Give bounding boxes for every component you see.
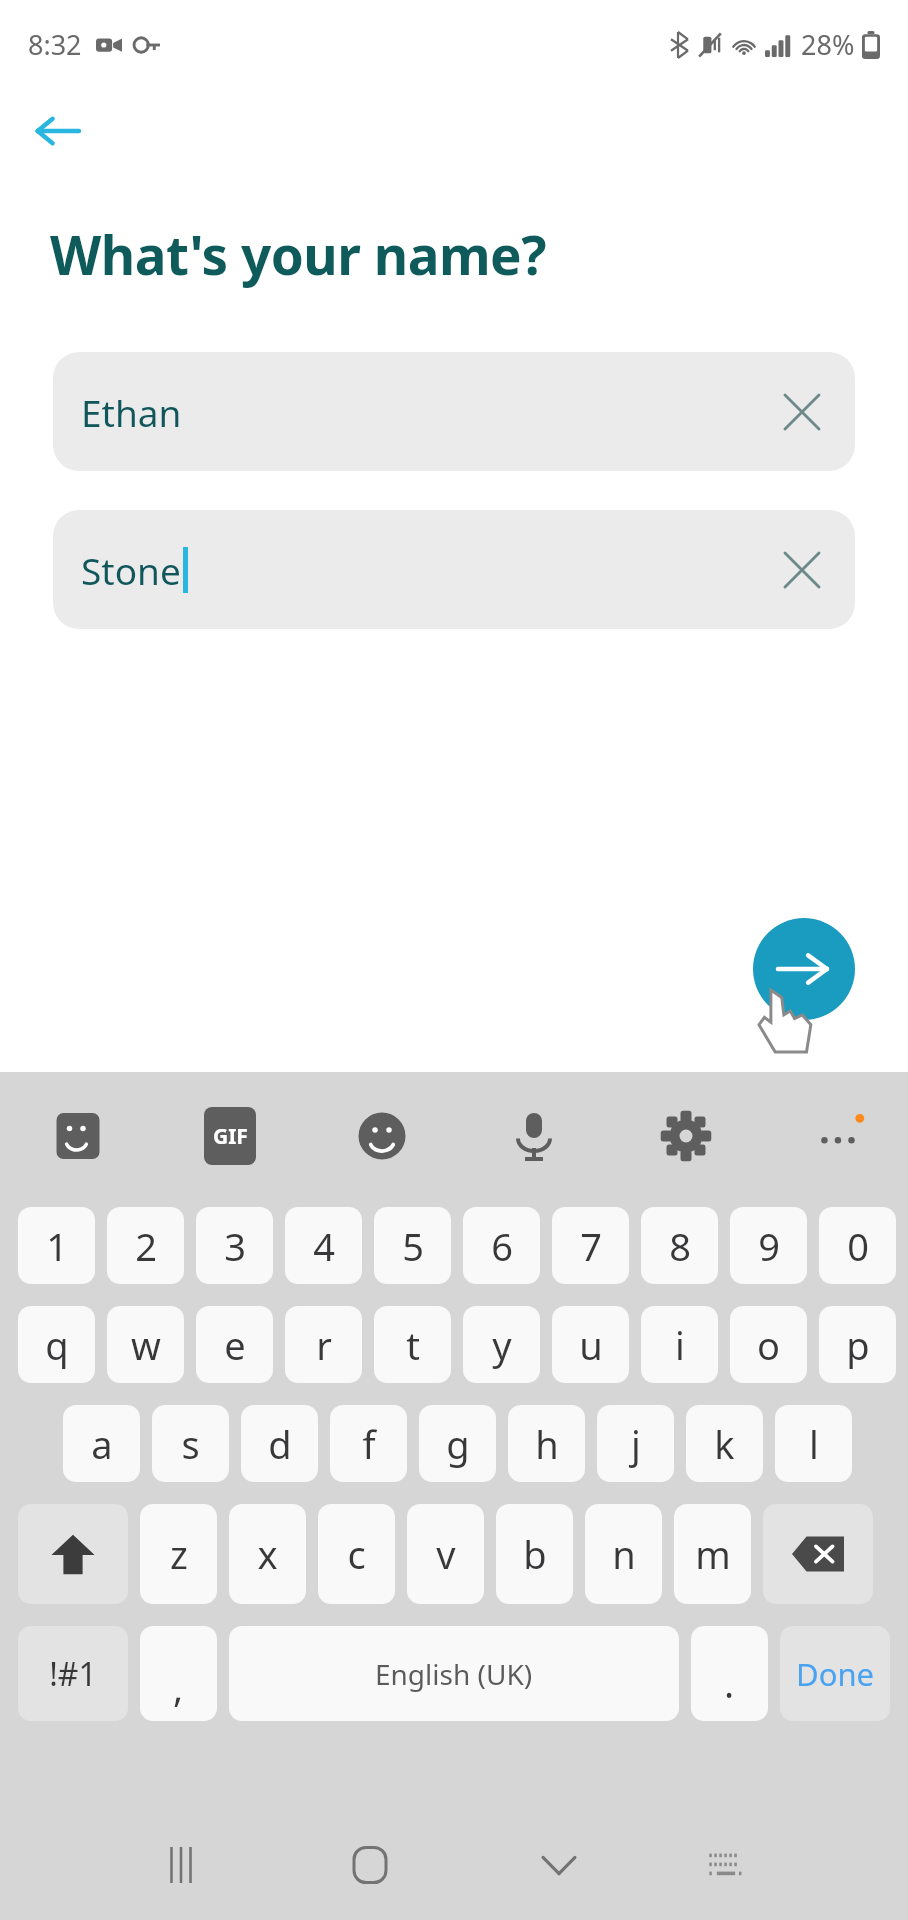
- button[interactable]: 7: [552, 1207, 629, 1284]
- button[interactable]: Back: [22, 96, 92, 166]
- staticText: !#1: [49, 1652, 97, 1696]
- staticText: 0: [847, 1220, 869, 1272]
- staticText: p: [846, 1319, 870, 1371]
- staticText: Done: [796, 1653, 875, 1695]
- button[interactable]: GIF: [197, 1103, 263, 1169]
- button[interactable]: More options: [804, 1101, 874, 1171]
- button[interactable]: !#1: [18, 1626, 128, 1721]
- button[interactable]: Shift: [18, 1504, 128, 1604]
- button[interactable]: g: [419, 1405, 496, 1482]
- staticText: o: [757, 1319, 780, 1371]
- button[interactable]: v: [407, 1504, 484, 1604]
- staticText: 7: [580, 1220, 602, 1272]
- staticText: 8: [669, 1220, 691, 1272]
- button[interactable]: d: [241, 1405, 318, 1482]
- staticText: 5: [402, 1220, 424, 1272]
- button[interactable]: n: [585, 1504, 662, 1604]
- button[interactable]: c: [318, 1504, 395, 1604]
- button[interactable]: Recents: [141, 1825, 221, 1905]
- button[interactable]: Ethan: [53, 352, 855, 471]
- button[interactable]: English (UK): [229, 1626, 679, 1721]
- button[interactable]: Voice input: [500, 1102, 568, 1170]
- staticText: j: [631, 1418, 641, 1470]
- button[interactable]: 0: [819, 1207, 896, 1284]
- staticText: t: [406, 1319, 420, 1371]
- button[interactable]: w: [107, 1306, 184, 1383]
- button[interactable]: 6: [463, 1207, 540, 1284]
- button[interactable]: Stone: [53, 510, 855, 629]
- button[interactable]: .: [691, 1626, 768, 1721]
- staticText: k: [714, 1418, 735, 1470]
- button[interactable]: i: [641, 1306, 718, 1383]
- staticText: e: [224, 1319, 246, 1371]
- button[interactable]: Home: [330, 1825, 410, 1905]
- button[interactable]: r: [285, 1306, 362, 1383]
- button[interactable]: z: [140, 1504, 217, 1604]
- staticText: y: [492, 1319, 512, 1371]
- staticText: 2: [135, 1220, 157, 1272]
- staticText: 3: [224, 1220, 246, 1272]
- staticText: c: [347, 1528, 366, 1580]
- staticText: 6: [491, 1220, 513, 1272]
- staticText: 28%: [801, 26, 855, 63]
- staticText: .: [724, 1657, 735, 1709]
- button[interactable]: p: [819, 1306, 896, 1383]
- button[interactable]: Next: [753, 918, 855, 1020]
- staticText: g: [446, 1418, 470, 1470]
- staticText: z: [170, 1528, 188, 1580]
- button[interactable]: Clear: [757, 367, 847, 457]
- button[interactable]: b: [496, 1504, 573, 1604]
- button[interactable]: s: [152, 1405, 229, 1482]
- button[interactable]: u: [552, 1306, 629, 1383]
- staticText: Ethan: [81, 387, 182, 437]
- button[interactable]: 1: [18, 1207, 95, 1284]
- button[interactable]: q: [18, 1306, 95, 1383]
- button[interactable]: l: [775, 1405, 852, 1482]
- staticText: b: [523, 1528, 547, 1580]
- button[interactable]: k: [686, 1405, 763, 1482]
- staticText: h: [535, 1418, 559, 1470]
- button[interactable]: Done: [780, 1626, 890, 1721]
- button[interactable]: Sticker: [44, 1102, 112, 1170]
- button[interactable]: y: [463, 1306, 540, 1383]
- button[interactable]: t: [374, 1306, 451, 1383]
- staticText: d: [268, 1418, 292, 1470]
- button[interactable]: o: [730, 1306, 807, 1383]
- staticText: a: [91, 1418, 113, 1470]
- button[interactable]: x: [229, 1504, 306, 1604]
- staticText: u: [579, 1319, 603, 1371]
- staticText: w: [131, 1319, 161, 1371]
- button[interactable]: Settings: [652, 1102, 720, 1170]
- staticText: q: [45, 1319, 69, 1371]
- staticText: ,: [173, 1661, 184, 1713]
- staticText: What's your name?: [50, 218, 547, 290]
- button[interactable]: 2: [107, 1207, 184, 1284]
- button[interactable]: Hide keyboard: [519, 1825, 599, 1905]
- button[interactable]: Clear: [757, 525, 847, 615]
- button[interactable]: 3: [196, 1207, 273, 1284]
- button[interactable]: 9: [730, 1207, 807, 1284]
- staticText: 1: [46, 1220, 68, 1272]
- button[interactable]: Backspace: [763, 1504, 873, 1604]
- button[interactable]: h: [508, 1405, 585, 1482]
- staticText: v: [436, 1528, 456, 1580]
- staticText: 9: [758, 1220, 780, 1272]
- button[interactable]: Keyboard layout: [686, 1825, 766, 1905]
- button[interactable]: j: [597, 1405, 674, 1482]
- button[interactable]: a: [63, 1405, 140, 1482]
- staticText: 8:32: [28, 26, 82, 63]
- staticText: GIF: [213, 1122, 248, 1151]
- staticText: n: [612, 1528, 636, 1580]
- staticText: r: [316, 1319, 332, 1371]
- button[interactable]: 4: [285, 1207, 362, 1284]
- button[interactable]: f: [330, 1405, 407, 1482]
- button[interactable]: e: [196, 1306, 273, 1383]
- staticText: f: [362, 1418, 376, 1470]
- staticText: 4: [313, 1220, 335, 1272]
- button[interactable]: ,: [140, 1626, 217, 1721]
- button[interactable]: 5: [374, 1207, 451, 1284]
- button[interactable]: 8: [641, 1207, 718, 1284]
- staticText: l: [809, 1418, 819, 1470]
- button[interactable]: m: [674, 1504, 751, 1604]
- button[interactable]: Emoji: [348, 1102, 416, 1170]
